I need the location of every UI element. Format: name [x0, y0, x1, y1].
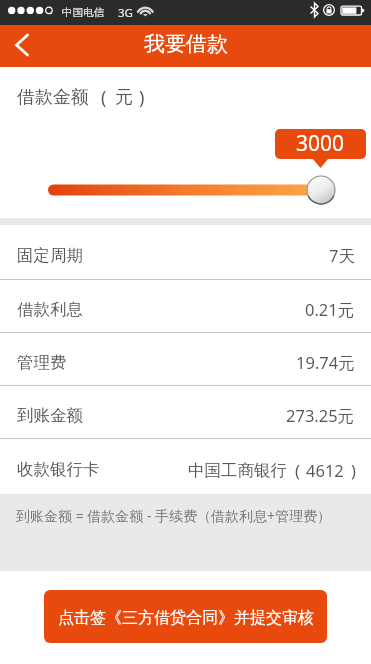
staticText: 273.25元: [286, 404, 355, 427]
staticText: 0.21元: [305, 298, 355, 321]
staticText: 元: [115, 86, 133, 109]
staticText: ): [351, 459, 356, 481]
staticText: 3G: [118, 5, 133, 21]
staticText: 到账金额: [17, 405, 83, 426]
button[interactable]: 收款银行卡: [0, 439, 371, 494]
staticText: 3000: [296, 129, 345, 158]
staticText: 中国工商银行: [188, 460, 287, 481]
staticText: 点击签《三方借贷合同》并提交审核: [58, 608, 314, 628]
button[interactable]: 管理费: [0, 333, 371, 385]
staticText: 7天: [329, 244, 355, 267]
staticText: 借款金额: [17, 86, 89, 109]
button[interactable]: 返回: [0, 25, 44, 67]
button[interactable]: 借款利息: [0, 280, 371, 332]
staticText: 借款利息: [17, 299, 83, 320]
staticText: 4612: [306, 459, 344, 481]
button[interactable]: 固定周期: [0, 225, 371, 279]
staticText: (: [101, 85, 107, 110]
staticText: 收款银行卡: [17, 459, 100, 480]
staticText: 管理费: [17, 352, 67, 373]
button[interactable]: 点击签《三方借贷合同》并提交审核: [44, 590, 327, 643]
staticText: 固定周期: [17, 245, 83, 266]
staticText: 到账金额 = 借款金额 - 手续费（借款利息+管理费）: [16, 506, 332, 525]
staticText: 我要借款: [144, 31, 228, 57]
staticText: 19.74元: [296, 351, 355, 374]
staticText: 中国电信: [62, 6, 104, 19]
staticText: (: [295, 459, 300, 481]
staticText: ): [139, 85, 145, 110]
button[interactable]: 到账金额: [0, 386, 371, 438]
